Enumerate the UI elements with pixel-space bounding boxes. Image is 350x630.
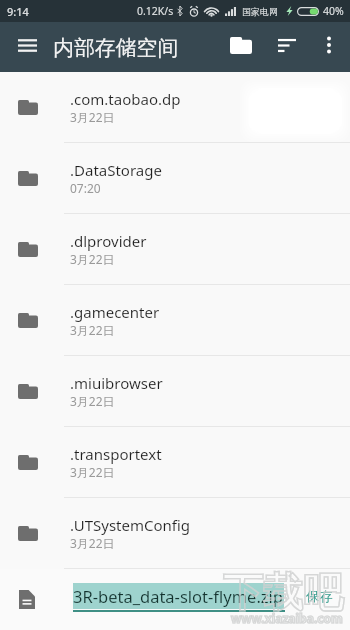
button[interactable]: .dlprovider	[0, 214, 350, 285]
staticText: 国家电网	[242, 6, 278, 17]
staticText: .com.taobao.dp	[70, 89, 181, 109]
staticText: 3月22日	[70, 251, 115, 267]
button[interactable]: .transportext	[0, 427, 350, 498]
button[interactable]: Navigation menu	[10, 30, 45, 65]
button[interactable]: .gamecenter	[0, 285, 350, 356]
staticText: .UTSystemConfig	[70, 515, 191, 535]
staticText: .transportext	[70, 444, 162, 464]
staticText: 3月22日	[70, 393, 115, 409]
staticText: www.xiazaiba.com	[231, 610, 343, 626]
staticText: .gamecenter	[70, 302, 160, 322]
button[interactable]: Sort	[260, 24, 306, 70]
staticText: 0.12K/s	[137, 4, 174, 18]
staticText: 3月22日	[70, 109, 115, 125]
button[interactable]: .DataStorage	[0, 143, 350, 214]
staticText: 07:20	[70, 180, 101, 196]
button[interactable]: .miuibrowser	[0, 356, 350, 427]
staticText: .dlprovider	[70, 231, 147, 251]
staticText: 40%	[323, 4, 344, 18]
staticText: 9:14	[7, 4, 29, 19]
button[interactable]: .UTSystemConfig	[0, 498, 350, 569]
staticText: 内部存储空间	[53, 35, 179, 61]
staticText: 3R-beta_data-slot-flyme.zip	[73, 585, 284, 607]
staticText: 3月22日	[70, 322, 115, 338]
button[interactable]: New folder	[214, 24, 260, 70]
staticText: 3月22日	[70, 535, 115, 551]
staticText: 下载吧	[223, 567, 343, 617]
button[interactable]: More options	[306, 25, 350, 69]
button[interactable]: .com.taobao.dp	[0, 72, 350, 143]
staticText: 3月22日	[70, 464, 115, 480]
staticText: .miuibrowser	[70, 373, 163, 393]
staticText: 保存	[306, 588, 333, 605]
staticText: .DataStorage	[70, 160, 162, 180]
button[interactable]: 保存	[306, 588, 333, 605]
